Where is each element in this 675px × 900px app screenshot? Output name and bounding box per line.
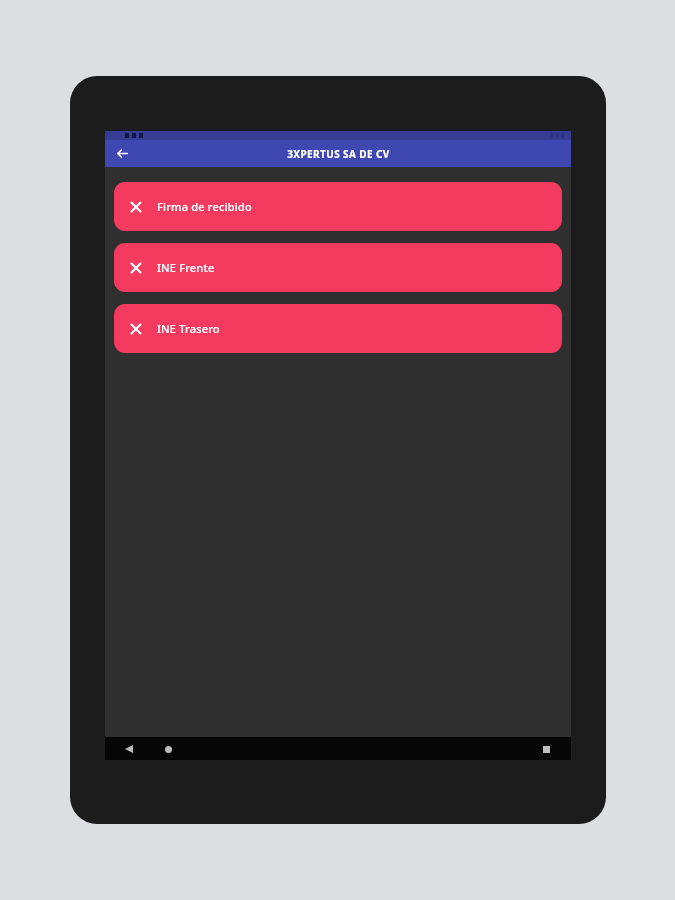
button[interactable]: Firma de recibido	[114, 182, 562, 231]
button[interactable]: Back	[110, 141, 135, 166]
staticText: 3XPERTUS SA DE CV	[287, 147, 390, 161]
button[interactable]: INE Frente	[114, 243, 562, 292]
button[interactable]: Home	[157, 738, 179, 760]
staticText: INE Frente	[157, 260, 215, 275]
button[interactable]: Recent apps	[535, 738, 557, 760]
staticText: INE Trasero	[157, 321, 220, 336]
button[interactable]: INE Trasero	[114, 304, 562, 353]
staticText: Firma de recibido	[157, 199, 252, 214]
button[interactable]: Back	[118, 738, 140, 760]
